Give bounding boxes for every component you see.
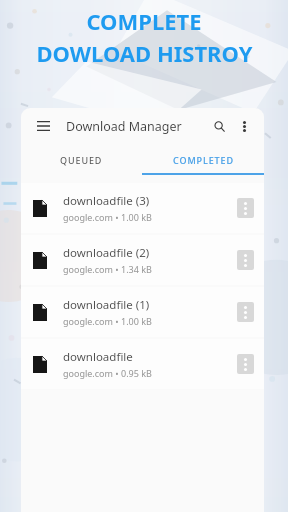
button[interactable]: downloadfile (3): [21, 183, 264, 233]
staticText: downloadfile: [63, 349, 133, 365]
staticText: google.com • 0.95 kB: [63, 367, 152, 379]
button[interactable]: QUEUED: [21, 144, 142, 175]
button[interactable]: downloadfile: [21, 339, 264, 389]
staticText: DOWLOAD HISTROY: [36, 38, 253, 68]
button[interactable]: More options: [235, 117, 253, 135]
staticText: COMPLETED: [173, 154, 234, 166]
staticText: downloadfile (2): [63, 245, 150, 261]
staticText: COMPLETE: [86, 6, 202, 36]
button[interactable]: downloadfile (1): [21, 287, 264, 337]
staticText: Download Manager: [66, 118, 209, 135]
button[interactable]: Search: [209, 116, 229, 136]
button[interactable]: More options: [237, 302, 254, 322]
button[interactable]: More options: [237, 250, 254, 270]
staticText: google.com • 1.34 kB: [63, 263, 152, 275]
staticText: QUEUED: [60, 154, 103, 166]
staticText: google.com • 1.00 kB: [63, 315, 152, 327]
button[interactable]: downloadfile (2): [21, 235, 264, 285]
button[interactable]: Open navigation menu: [32, 115, 54, 137]
button[interactable]: More options: [237, 354, 254, 374]
staticText: downloadfile (3): [63, 193, 150, 209]
button[interactable]: More options: [237, 198, 254, 218]
staticText: google.com • 1.00 kB: [63, 211, 152, 223]
staticText: downloadfile (1): [63, 297, 150, 313]
button[interactable]: COMPLETED: [142, 144, 264, 175]
